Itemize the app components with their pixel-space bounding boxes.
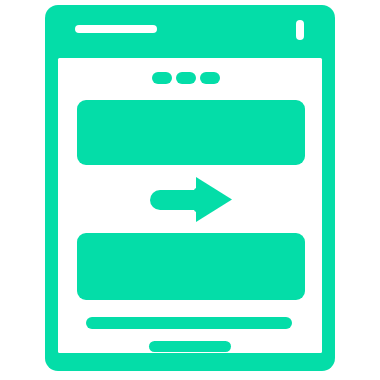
button[interactable]: Mobile data transfer illustration xyxy=(0,0,380,380)
